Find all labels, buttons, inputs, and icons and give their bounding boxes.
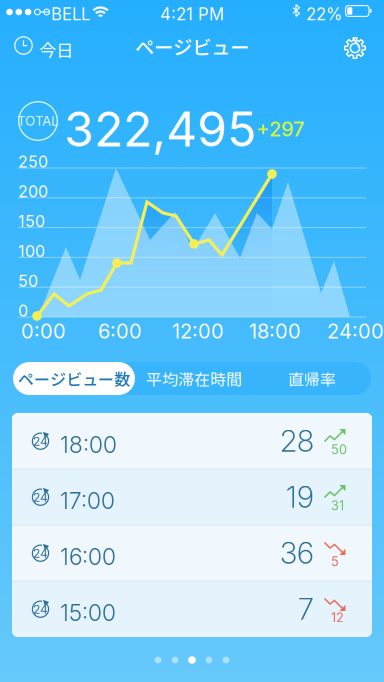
staticText: 100 bbox=[18, 241, 45, 261]
staticText: 200 bbox=[18, 182, 48, 201]
staticText: 22% bbox=[306, 4, 342, 24]
staticText: 7 bbox=[298, 591, 314, 627]
staticText: +297 bbox=[256, 117, 304, 141]
button[interactable]: 24 bbox=[12, 413, 372, 469]
button[interactable]: Settings bbox=[0, 24, 384, 68]
button[interactable]: 24 bbox=[12, 469, 372, 525]
staticText: 24 bbox=[33, 490, 48, 505]
staticText: 50 bbox=[331, 442, 347, 457]
staticText: 322,495 bbox=[64, 100, 256, 158]
staticText: 12 bbox=[331, 610, 344, 625]
staticText: 18:00 bbox=[60, 431, 117, 458]
staticText: 平均滞在時間 bbox=[146, 367, 242, 390]
button[interactable]: 平均滞在時間 bbox=[135, 362, 253, 395]
staticText: 24 bbox=[33, 434, 48, 449]
staticText: 5 bbox=[331, 554, 339, 569]
staticText: 4:21 PM bbox=[160, 4, 224, 24]
staticText: 18:00 bbox=[249, 319, 301, 343]
staticText: 250 bbox=[18, 152, 48, 171]
staticText: ページビュー bbox=[135, 32, 249, 60]
button[interactable]: ページビュー数 bbox=[13, 362, 135, 395]
button[interactable]: 今日 bbox=[0, 24, 92, 68]
staticText: 150 bbox=[18, 212, 45, 231]
staticText: TOTAL bbox=[17, 113, 59, 129]
staticText: 28 bbox=[280, 423, 314, 459]
staticText: 6:00 bbox=[98, 319, 142, 343]
staticText: 31 bbox=[331, 498, 344, 513]
staticText: ページビュー数 bbox=[18, 367, 130, 390]
staticText: 0:00 bbox=[21, 319, 66, 343]
staticText: 24 bbox=[33, 546, 48, 561]
button[interactable]: 24 bbox=[12, 581, 372, 637]
button[interactable]: 24 bbox=[12, 525, 372, 581]
button[interactable]: 直帰率 bbox=[253, 362, 371, 395]
staticText: 24:00 bbox=[327, 319, 384, 343]
staticText: 直帰率 bbox=[288, 367, 336, 390]
staticText: 0 bbox=[18, 301, 28, 320]
staticText: BELL bbox=[51, 4, 90, 24]
staticText: 15:00 bbox=[60, 599, 116, 626]
staticText: 50 bbox=[18, 271, 38, 291]
staticText: 16:00 bbox=[60, 543, 116, 570]
staticText: 今日 bbox=[39, 37, 73, 62]
staticText: 17:00 bbox=[60, 487, 115, 514]
staticText: 12:00 bbox=[172, 319, 224, 343]
staticText: 24 bbox=[33, 602, 48, 617]
staticText: 19 bbox=[286, 479, 314, 515]
staticText: 36 bbox=[280, 535, 314, 571]
